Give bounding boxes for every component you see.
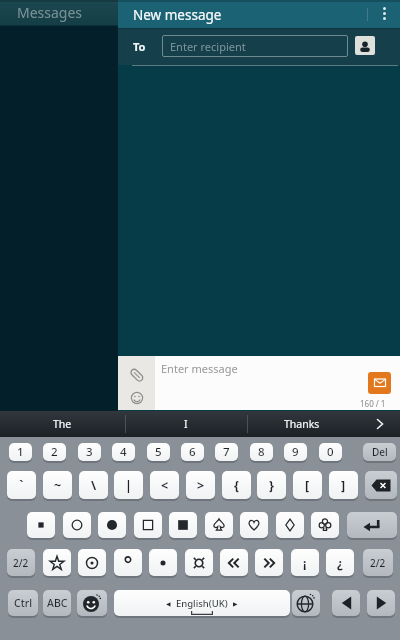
button[interactable]: I [125, 411, 247, 437]
staticText: 4 [120, 444, 127, 460]
staticText: 2/2 [370, 556, 386, 570]
staticText: } [269, 477, 274, 494]
staticText: 7 [223, 444, 230, 460]
button[interactable]: ~ [43, 471, 72, 499]
staticText: I [184, 417, 188, 431]
button[interactable] [63, 512, 91, 538]
button[interactable]: } [257, 471, 286, 499]
button[interactable]: > [186, 471, 215, 499]
staticText: Del [372, 445, 388, 459]
button[interactable]: Del [363, 443, 396, 461]
button[interactable] [355, 36, 375, 55]
staticText: ◀ [166, 600, 171, 607]
staticText: 2/2 [13, 556, 29, 570]
button[interactable]: 2 [43, 443, 66, 461]
staticText: Messages [17, 3, 83, 22]
staticText: 1 [17, 444, 24, 460]
staticText: 5 [155, 444, 162, 460]
button[interactable] [124, 388, 149, 408]
staticText: | [125, 477, 132, 494]
staticText: [ [305, 477, 310, 494]
button[interactable]: 6 [181, 443, 204, 461]
staticText: 9 [292, 444, 299, 460]
button[interactable]: ¡ [291, 549, 319, 576]
button[interactable]: ABC [43, 590, 71, 616]
staticText: 3 [86, 444, 93, 460]
staticText: 160 / 1 [360, 398, 386, 409]
button[interactable]: The [0, 411, 125, 437]
button[interactable]: Thanks [247, 411, 357, 437]
button[interactable] [378, 7, 390, 23]
button[interactable] [43, 549, 71, 576]
staticText: New message [133, 6, 222, 24]
button[interactable]: 5 [147, 443, 170, 461]
button[interactable] [360, 411, 400, 437]
staticText: ] [341, 477, 346, 494]
button[interactable] [332, 590, 360, 616]
staticText: Enter message [161, 361, 238, 376]
button[interactable]: 4 [112, 443, 135, 461]
button[interactable] [124, 362, 149, 387]
staticText: ABC [47, 596, 68, 610]
button[interactable]: ◀ [114, 590, 290, 616]
button[interactable]: 3 [78, 443, 101, 461]
button[interactable]: ` [7, 471, 36, 499]
button[interactable]: 8 [250, 443, 273, 461]
staticText: English(UK) [171, 597, 233, 610]
button[interactable] [78, 549, 106, 576]
staticText: 8 [258, 444, 265, 460]
button[interactable]: < [150, 471, 179, 499]
button[interactable] [169, 512, 197, 538]
button[interactable] [365, 471, 397, 499]
button[interactable] [77, 590, 107, 616]
button[interactable] [311, 512, 339, 538]
button[interactable]: Enter recipient [162, 35, 348, 57]
staticText: Ctrl [14, 596, 32, 610]
staticText: 0 [327, 444, 334, 460]
button[interactable] [134, 512, 162, 538]
staticText: > [197, 477, 205, 494]
button[interactable]: 9 [284, 443, 307, 461]
button[interactable] [149, 549, 177, 576]
button[interactable] [220, 549, 248, 576]
staticText: { [234, 477, 239, 494]
staticText: ▶ [233, 600, 238, 607]
staticText: \ [91, 477, 97, 494]
button[interactable] [27, 512, 55, 538]
button[interactable] [276, 512, 304, 538]
button[interactable]: 2/2 [7, 549, 35, 576]
staticText: ¡ [303, 555, 307, 571]
button[interactable]: | [114, 471, 143, 499]
button[interactable]: 7 [215, 443, 238, 461]
staticText: ¿ [337, 555, 343, 571]
button[interactable] [205, 512, 233, 538]
button[interactable]: Messages [0, 0, 118, 25]
button[interactable]: 0 [319, 443, 342, 461]
button[interactable]: \ [79, 471, 108, 499]
button[interactable]: 1 [9, 443, 32, 461]
button[interactable]: Ctrl [8, 590, 38, 616]
button[interactable] [255, 549, 283, 576]
button[interactable] [347, 512, 397, 538]
button[interactable]: ¿ [326, 549, 354, 576]
button[interactable] [98, 512, 126, 538]
button[interactable] [368, 372, 391, 394]
staticText: The [53, 417, 72, 431]
button[interactable] [292, 590, 320, 616]
button[interactable] [114, 549, 142, 576]
button[interactable] [367, 590, 395, 616]
staticText: < [161, 477, 169, 494]
button[interactable]: { [222, 471, 251, 499]
staticText: 2 [51, 444, 58, 460]
button[interactable]: 2/2 [363, 549, 393, 576]
staticText: Enter recipient [170, 39, 246, 54]
button[interactable] [240, 512, 268, 538]
staticText: ~ [54, 477, 62, 494]
button[interactable]: [ [293, 471, 322, 499]
button[interactable]: ] [329, 471, 358, 499]
button[interactable] [185, 549, 213, 576]
staticText: ` [19, 477, 24, 494]
staticText: Thanks [284, 417, 320, 431]
staticText: 6 [189, 444, 196, 460]
staticText: To [133, 39, 146, 54]
